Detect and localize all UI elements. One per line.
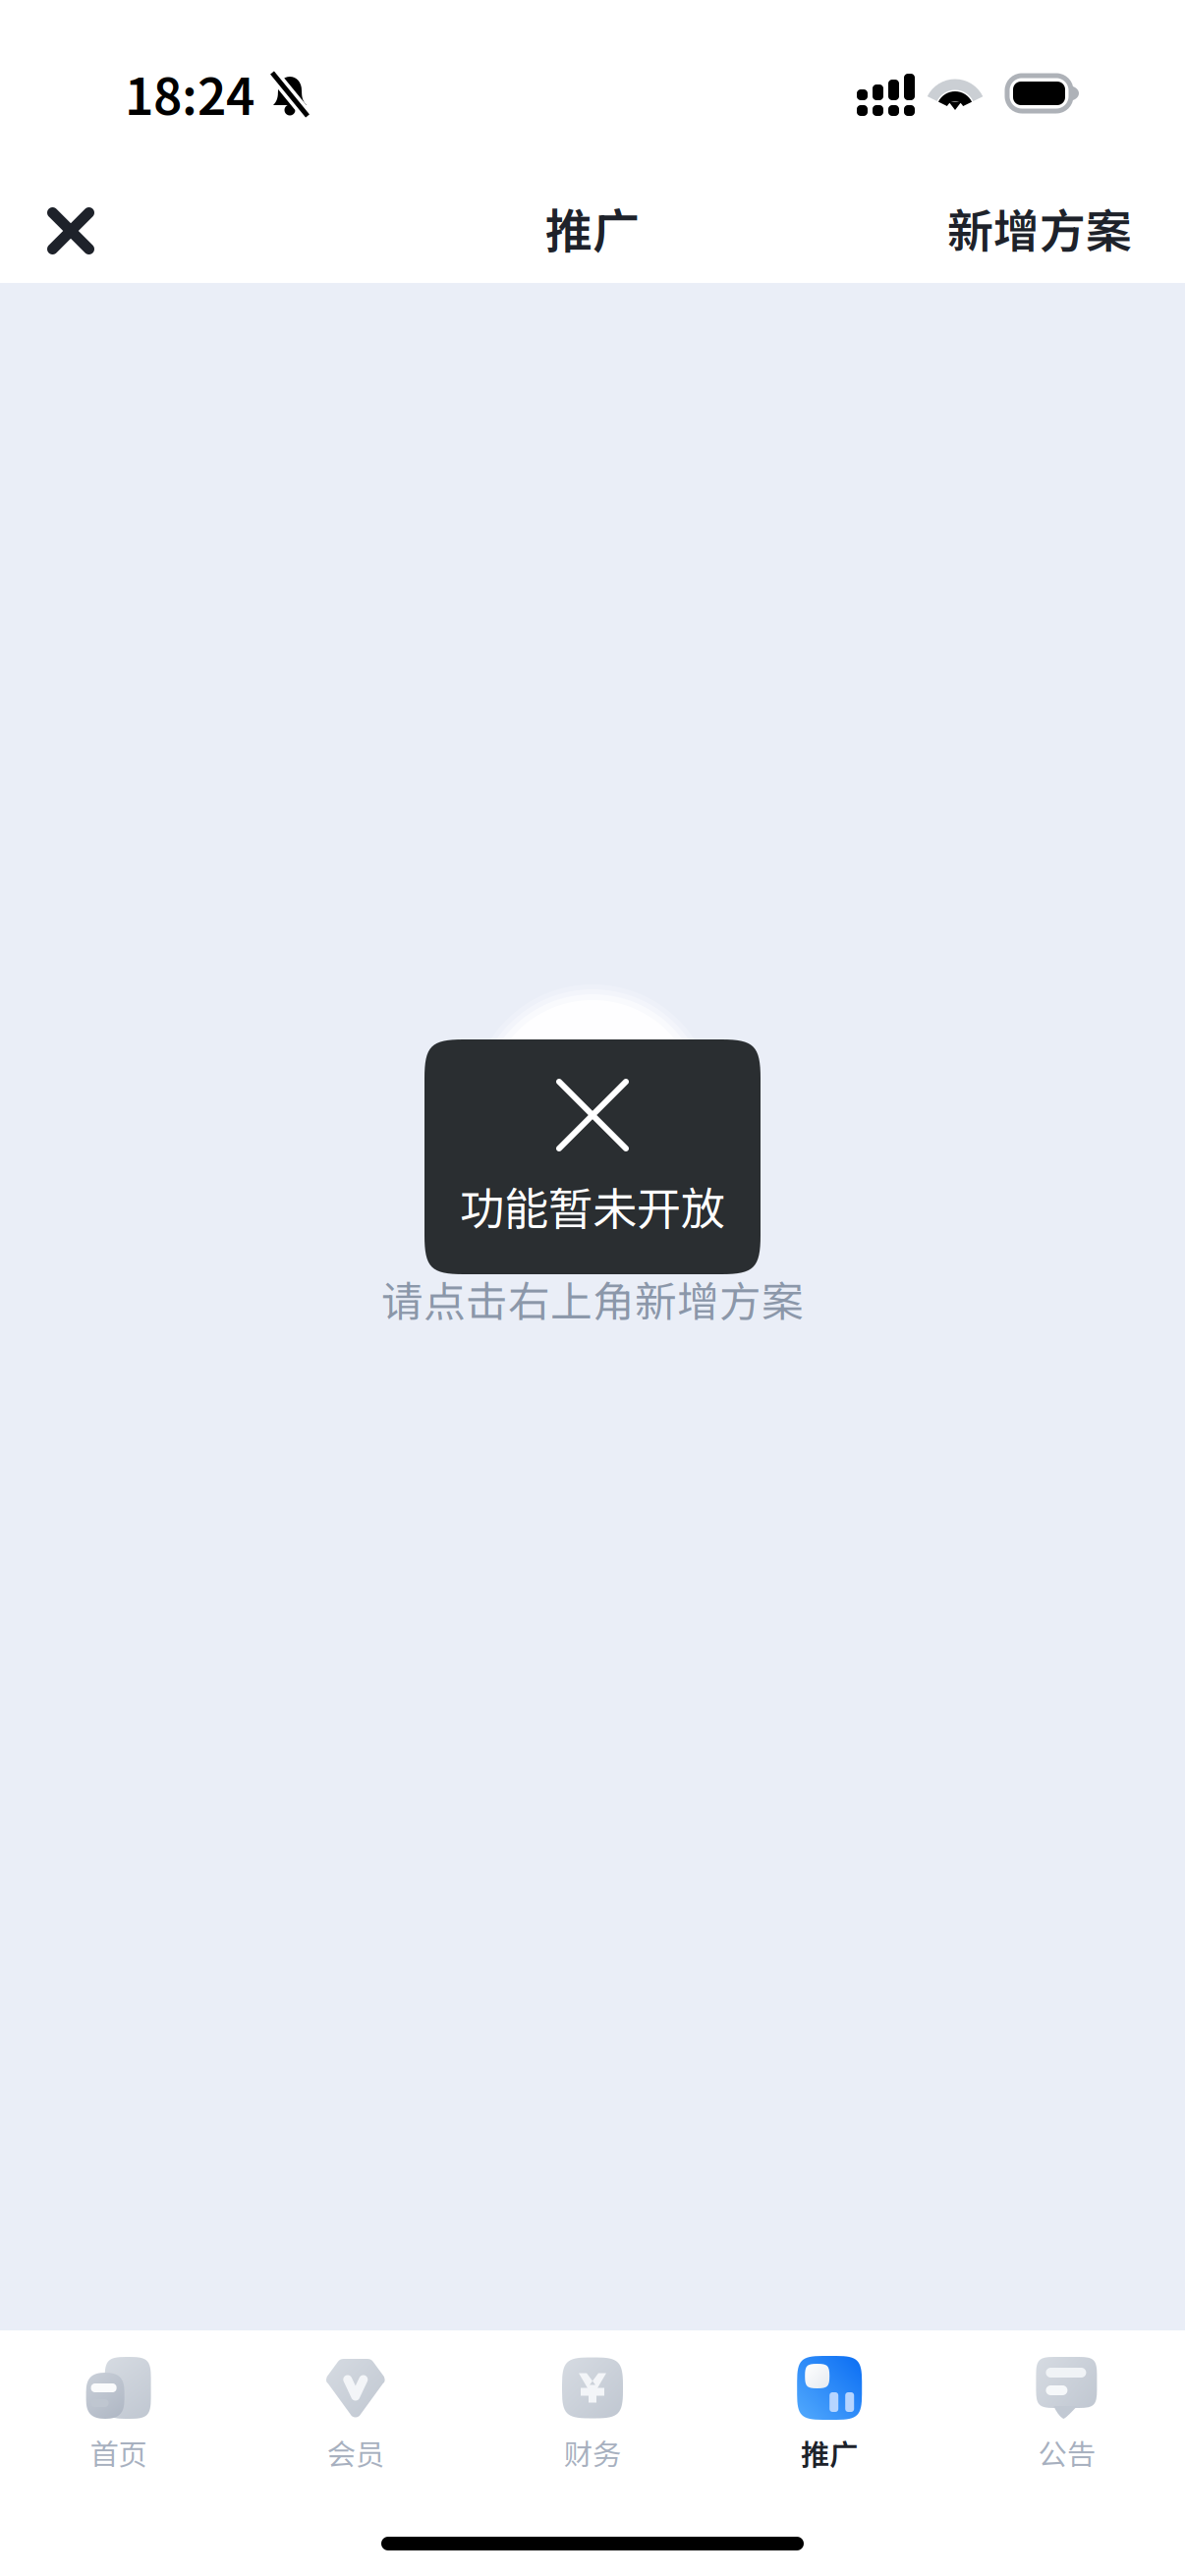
staticText: 首页 xyxy=(90,2432,147,2473)
button[interactable]: 公告 xyxy=(948,2330,1185,2503)
staticText: 会员 xyxy=(327,2432,384,2473)
staticText: 请点击右上角新增方案 xyxy=(381,1268,804,1329)
button[interactable]: 财务 xyxy=(474,2330,711,2503)
button[interactable]: 推广 xyxy=(711,2330,948,2503)
staticText: 公告 xyxy=(1038,2432,1095,2473)
staticText: 功能暂未开放 xyxy=(460,1173,725,1238)
staticText: 新增方案 xyxy=(947,195,1132,261)
staticText: 财务 xyxy=(564,2432,621,2473)
staticText: 推广 xyxy=(801,2432,858,2473)
button[interactable]: 会员 xyxy=(237,2330,474,2503)
staticText: 18:24 xyxy=(125,57,254,129)
staticText: 推广 xyxy=(545,194,640,262)
button[interactable]: 新增方案 xyxy=(918,173,1132,283)
button[interactable]: 关闭 xyxy=(24,173,118,283)
button[interactable]: 首页 xyxy=(0,2330,237,2503)
